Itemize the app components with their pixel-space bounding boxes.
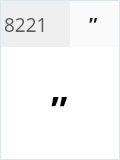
- staticText: 8221: [4, 12, 48, 38]
- staticText: ”: [89, 12, 98, 38]
- button[interactable]: Quotes: [70, 1, 119, 47]
- button[interactable]: 8221: [1, 1, 70, 47]
- staticText: ”: [51, 84, 68, 134]
